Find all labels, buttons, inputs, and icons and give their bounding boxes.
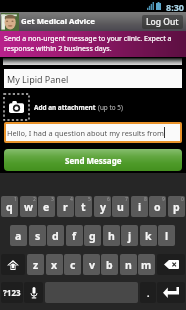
- button[interactable]: h: [103, 225, 120, 246]
- button[interactable]: e: [38, 196, 55, 217]
- staticText: o: [154, 200, 161, 214]
- staticText: 4: [70, 196, 73, 203]
- staticText: k: [145, 229, 152, 243]
- staticText: 0: [181, 196, 184, 203]
- staticText: 3: [51, 196, 54, 203]
- button[interactable]: k: [140, 225, 157, 246]
- staticText: i: [138, 200, 142, 214]
- button[interactable]: b: [101, 254, 118, 275]
- staticText: Get Medical Advice: [21, 16, 95, 27]
- button[interactable]: f: [66, 225, 83, 246]
- staticText: Log Out: [146, 16, 179, 28]
- button[interactable]: n: [120, 254, 137, 275]
- button[interactable]: Delete: [157, 254, 185, 275]
- staticText: n: [125, 258, 132, 272]
- staticText: 9: [162, 196, 165, 203]
- button[interactable]: u: [112, 196, 129, 217]
- staticText: e: [43, 200, 50, 214]
- staticText: z: [33, 258, 39, 272]
- staticText: q: [6, 200, 13, 214]
- button[interactable]: d: [47, 225, 64, 246]
- staticText: (up to 5): [98, 103, 123, 112]
- button[interactable]: o: [149, 196, 166, 217]
- staticText: a: [15, 229, 22, 243]
- button[interactable]: v: [83, 254, 100, 275]
- button[interactable]: Hello, I had a question about my results…: [6, 124, 180, 141]
- staticText: Add an attachment: [34, 103, 98, 112]
- button[interactable]: r: [57, 196, 74, 217]
- button[interactable]: l: [158, 225, 175, 246]
- staticText: v: [89, 258, 95, 272]
- button[interactable]: Voice input: [24, 282, 43, 303]
- staticText: c: [70, 258, 76, 272]
- button[interactable]: y: [94, 196, 111, 217]
- button[interactable]: w: [20, 196, 37, 217]
- button[interactable]: x: [46, 254, 63, 275]
- staticText: 6: [107, 196, 110, 203]
- button[interactable]: ?123: [1, 282, 23, 303]
- staticText: f: [72, 229, 77, 243]
- staticText: s: [35, 229, 41, 243]
- staticText: 2: [33, 196, 36, 203]
- button[interactable]: Log Out: [142, 15, 183, 29]
- staticText: h: [108, 229, 115, 243]
- button[interactable]: s: [29, 225, 46, 246]
- staticText: w: [24, 200, 33, 214]
- button[interactable]: p: [168, 196, 185, 217]
- staticText: j: [128, 229, 132, 243]
- staticText: x: [51, 258, 58, 272]
- staticText: Send Message: [65, 155, 122, 166]
- staticText: response within 2 business days.: [4, 44, 112, 54]
- staticText: l: [165, 229, 169, 243]
- staticText: r: [63, 200, 68, 214]
- button[interactable]: Enter: [157, 282, 185, 303]
- staticText: ?123: [3, 287, 21, 298]
- staticText: p: [173, 200, 180, 214]
- staticText: Send a non-urgent message to your clinic…: [4, 34, 172, 44]
- staticText: Hello, I had a question about my results…: [7, 128, 164, 138]
- staticText: 1: [14, 196, 17, 203]
- button[interactable]: t: [75, 196, 92, 217]
- button[interactable]: My Lipid Panel: [4, 69, 182, 88]
- staticText: t: [81, 200, 86, 214]
- staticText: y: [100, 200, 106, 214]
- button[interactable]: q: [1, 196, 18, 217]
- button[interactable]: i: [131, 196, 148, 217]
- button[interactable]: m: [138, 254, 155, 275]
- button[interactable]: c: [64, 254, 81, 275]
- staticText: 5: [88, 196, 91, 203]
- staticText: My Lipid Panel: [7, 73, 69, 85]
- staticText: u: [117, 200, 124, 214]
- button[interactable]: a: [10, 225, 27, 246]
- button[interactable]: g: [84, 225, 101, 246]
- staticText: 8: [144, 196, 147, 203]
- staticText: .: [147, 287, 150, 299]
- staticText: d: [52, 229, 59, 243]
- staticText: g: [89, 229, 96, 243]
- button[interactable]: j: [121, 225, 138, 246]
- staticText: 8:30: [166, 1, 184, 13]
- button[interactable]: Shift: [1, 254, 25, 275]
- staticText: 7: [125, 196, 128, 203]
- button[interactable]: z: [27, 254, 44, 275]
- button[interactable]: Add an attachment: [4, 94, 29, 120]
- button[interactable]: Send Message: [4, 149, 182, 171]
- button[interactable]: .: [140, 282, 156, 303]
- staticText: m: [141, 258, 152, 272]
- staticText: b: [106, 258, 113, 272]
